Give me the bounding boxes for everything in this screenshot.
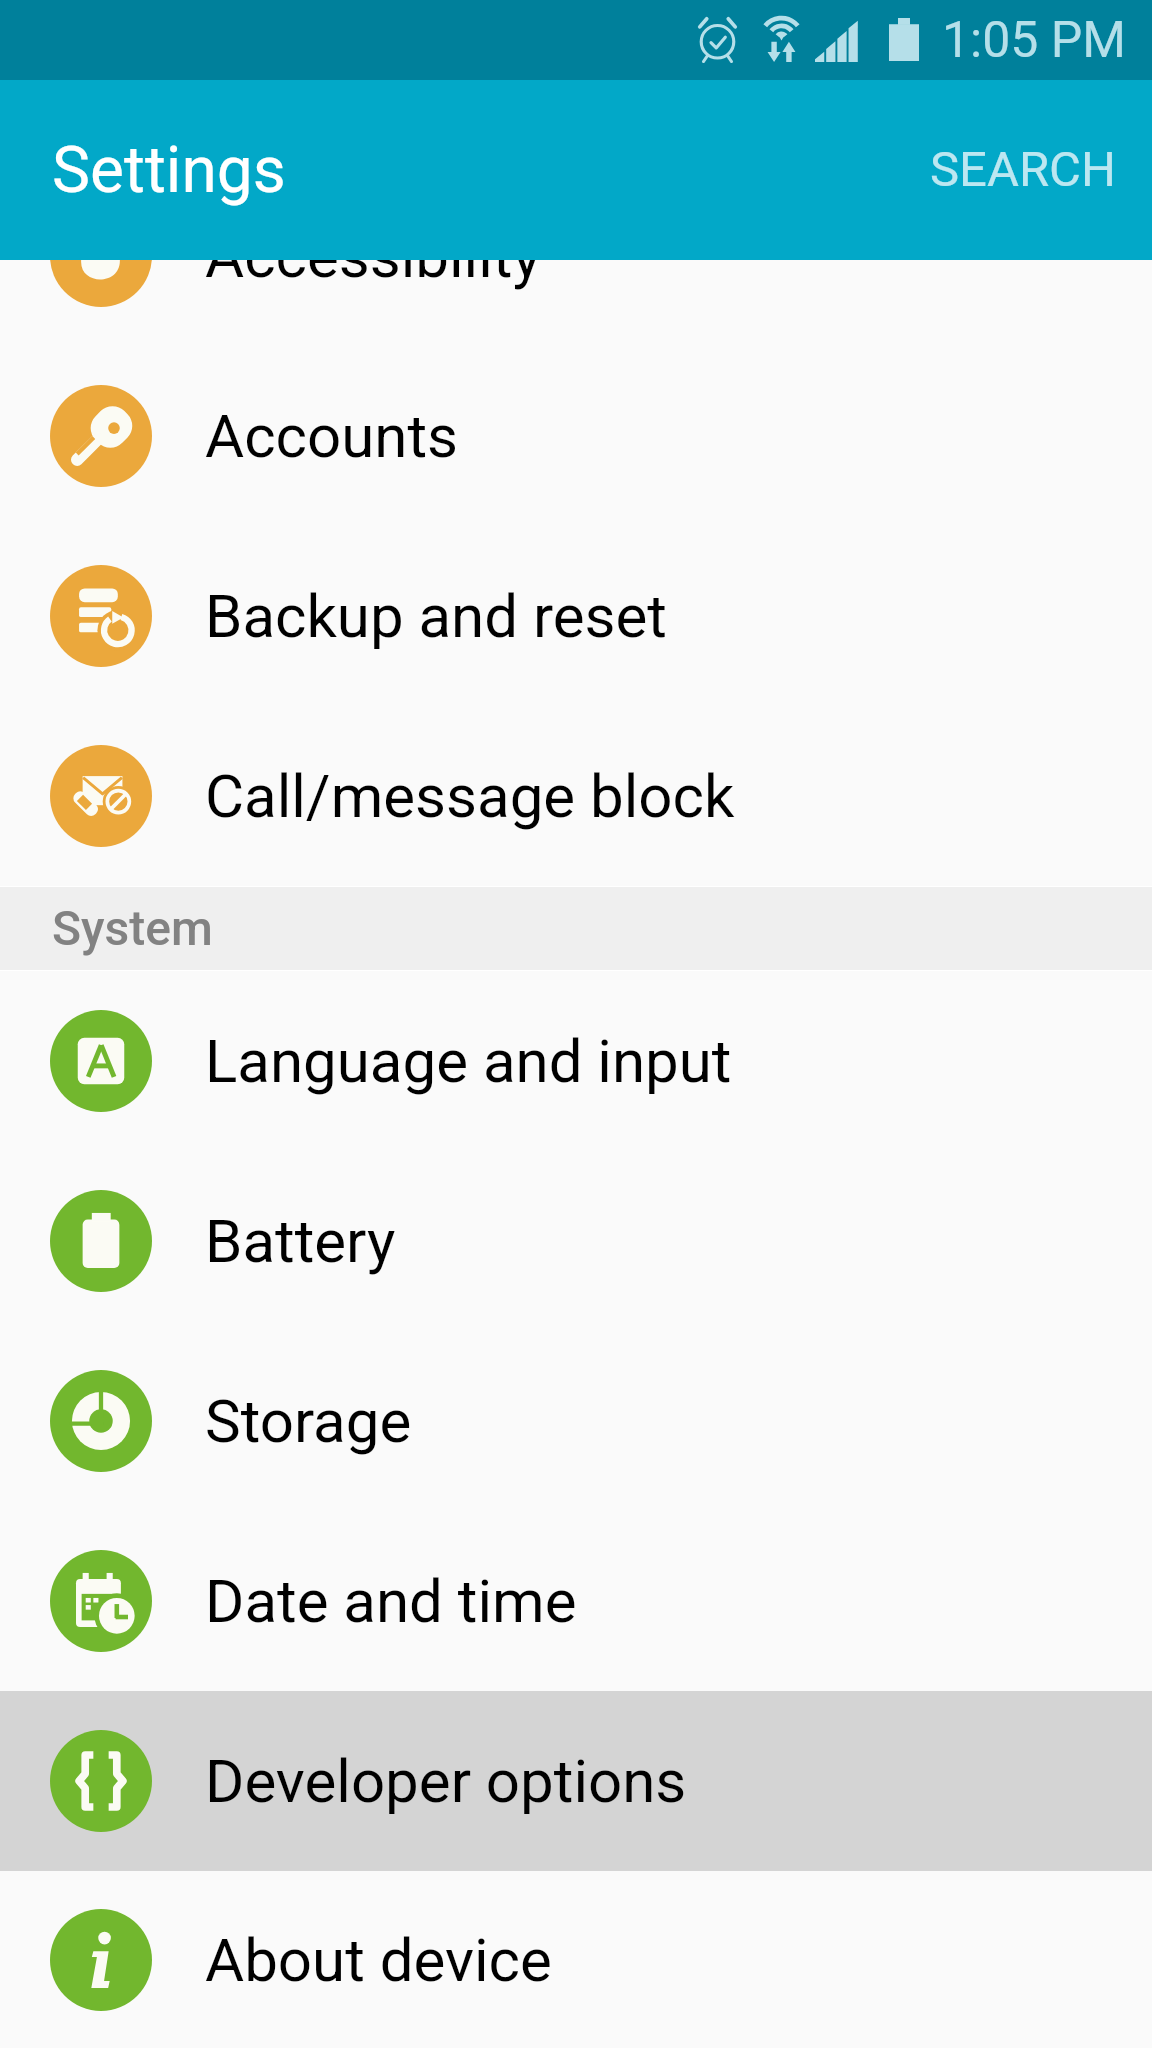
other: Battery xyxy=(50,1190,152,1292)
staticText: Backup and reset xyxy=(205,581,667,651)
other: Developer options xyxy=(50,1730,152,1832)
staticText: Storage xyxy=(205,1386,412,1456)
button[interactable]: Date and time xyxy=(0,1511,1152,1691)
staticText: Date and time xyxy=(205,1566,577,1636)
staticText: About device xyxy=(205,1925,552,1995)
other: Accessibility xyxy=(50,260,152,307)
staticText: 1:05 PM xyxy=(942,11,1127,70)
staticText: Battery xyxy=(205,1206,396,1276)
staticText: Settings xyxy=(52,133,286,208)
staticText: Language and input xyxy=(205,1026,732,1096)
button[interactable]: Language and input xyxy=(0,971,1152,1151)
other: Backup and reset xyxy=(50,565,152,667)
other: About device xyxy=(50,1909,152,2011)
button[interactable]: Backup and reset xyxy=(0,526,1152,706)
staticText: System xyxy=(52,900,213,956)
staticText: Accounts xyxy=(205,401,458,471)
other: Accounts xyxy=(50,385,152,487)
staticText: Developer options xyxy=(205,1746,687,1816)
button[interactable]: About device xyxy=(0,1871,1152,2048)
other: Language and input xyxy=(50,1010,152,1112)
other: Call/message block xyxy=(50,745,152,847)
button[interactable]: Accounts xyxy=(0,346,1152,526)
staticText: SEARCH xyxy=(930,141,1116,198)
button[interactable]: Accessibility xyxy=(0,260,1152,346)
staticText: Call/message block xyxy=(205,761,735,831)
staticText: Accessibility xyxy=(205,260,541,291)
other: Storage xyxy=(50,1370,152,1472)
button[interactable]: Storage xyxy=(0,1331,1152,1511)
button[interactable]: Call/message block xyxy=(0,706,1152,886)
button[interactable]: Developer options xyxy=(0,1691,1152,1871)
other: Date and time xyxy=(50,1550,152,1652)
button[interactable]: Battery xyxy=(0,1151,1152,1331)
button[interactable]: Search settings xyxy=(890,98,1152,243)
